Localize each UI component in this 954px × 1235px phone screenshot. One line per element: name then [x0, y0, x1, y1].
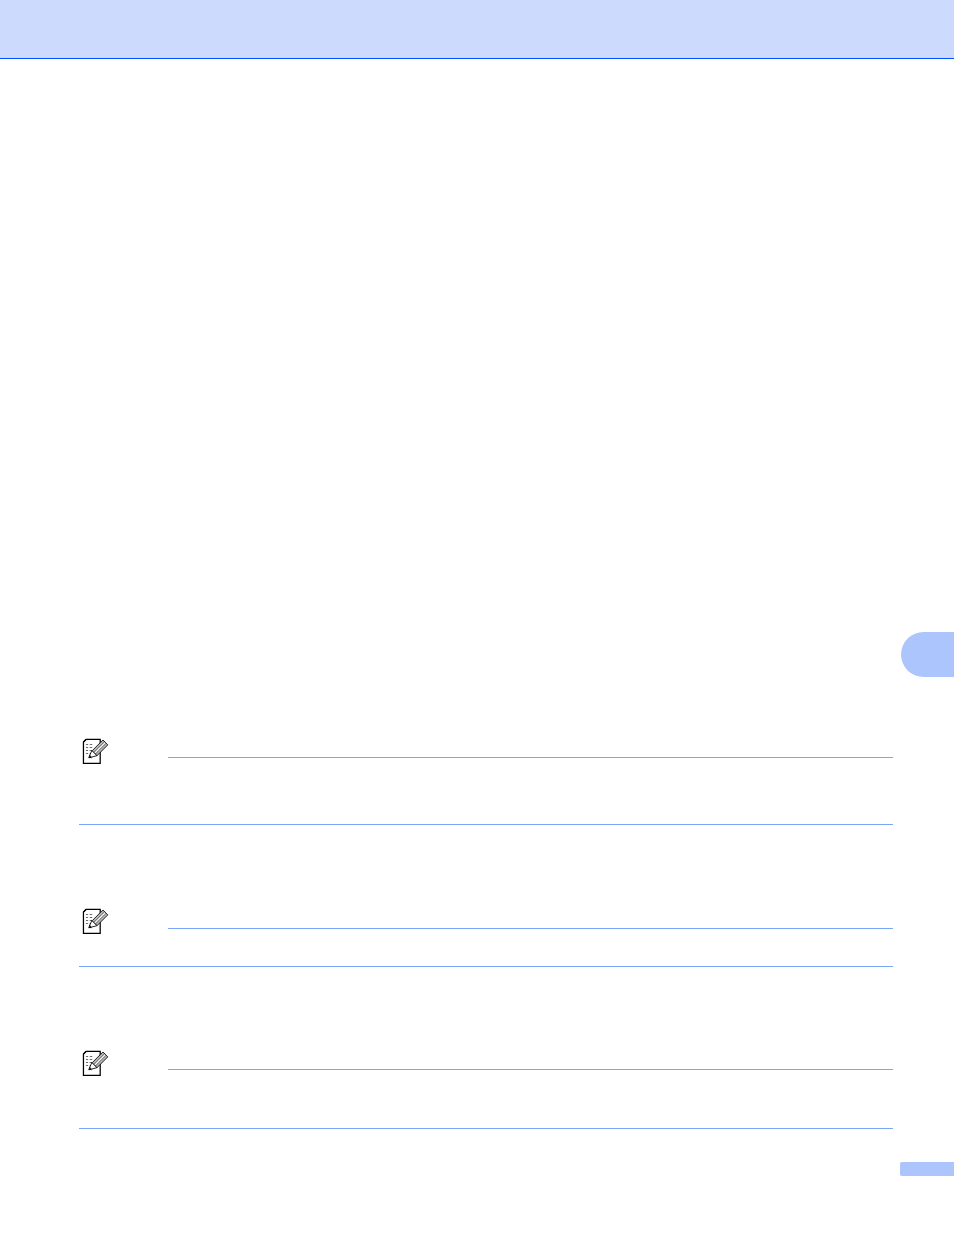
- button[interactable]: Note: [83, 739, 108, 764]
- button[interactable]: Chapter tab: [901, 632, 954, 677]
- button[interactable]: Note: [83, 909, 108, 934]
- button[interactable]: Note: [83, 1051, 108, 1076]
